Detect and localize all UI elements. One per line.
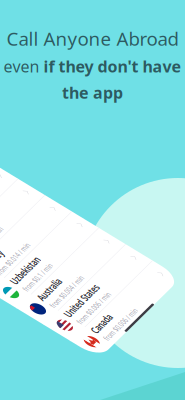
- staticText: if they don't have: [43, 56, 181, 77]
- button[interactable]: Poland: [0, 328, 185, 390]
- button[interactable]: Portugal: [0, 391, 185, 400]
- staticText: Sweden: [0, 206, 13, 236]
- staticText: from $0.014 / min: [0, 301, 74, 324]
- staticText: Call Anyone Abroad: [6, 26, 178, 51]
- button[interactable]: Sweden: [0, 202, 185, 264]
- staticText: the app: [62, 82, 123, 103]
- button[interactable]: Norway: [0, 265, 185, 327]
- staticText: from $0.014 / min: [0, 238, 74, 261]
- staticText: even: [3, 56, 39, 77]
- staticText: Norway: [0, 269, 14, 299]
